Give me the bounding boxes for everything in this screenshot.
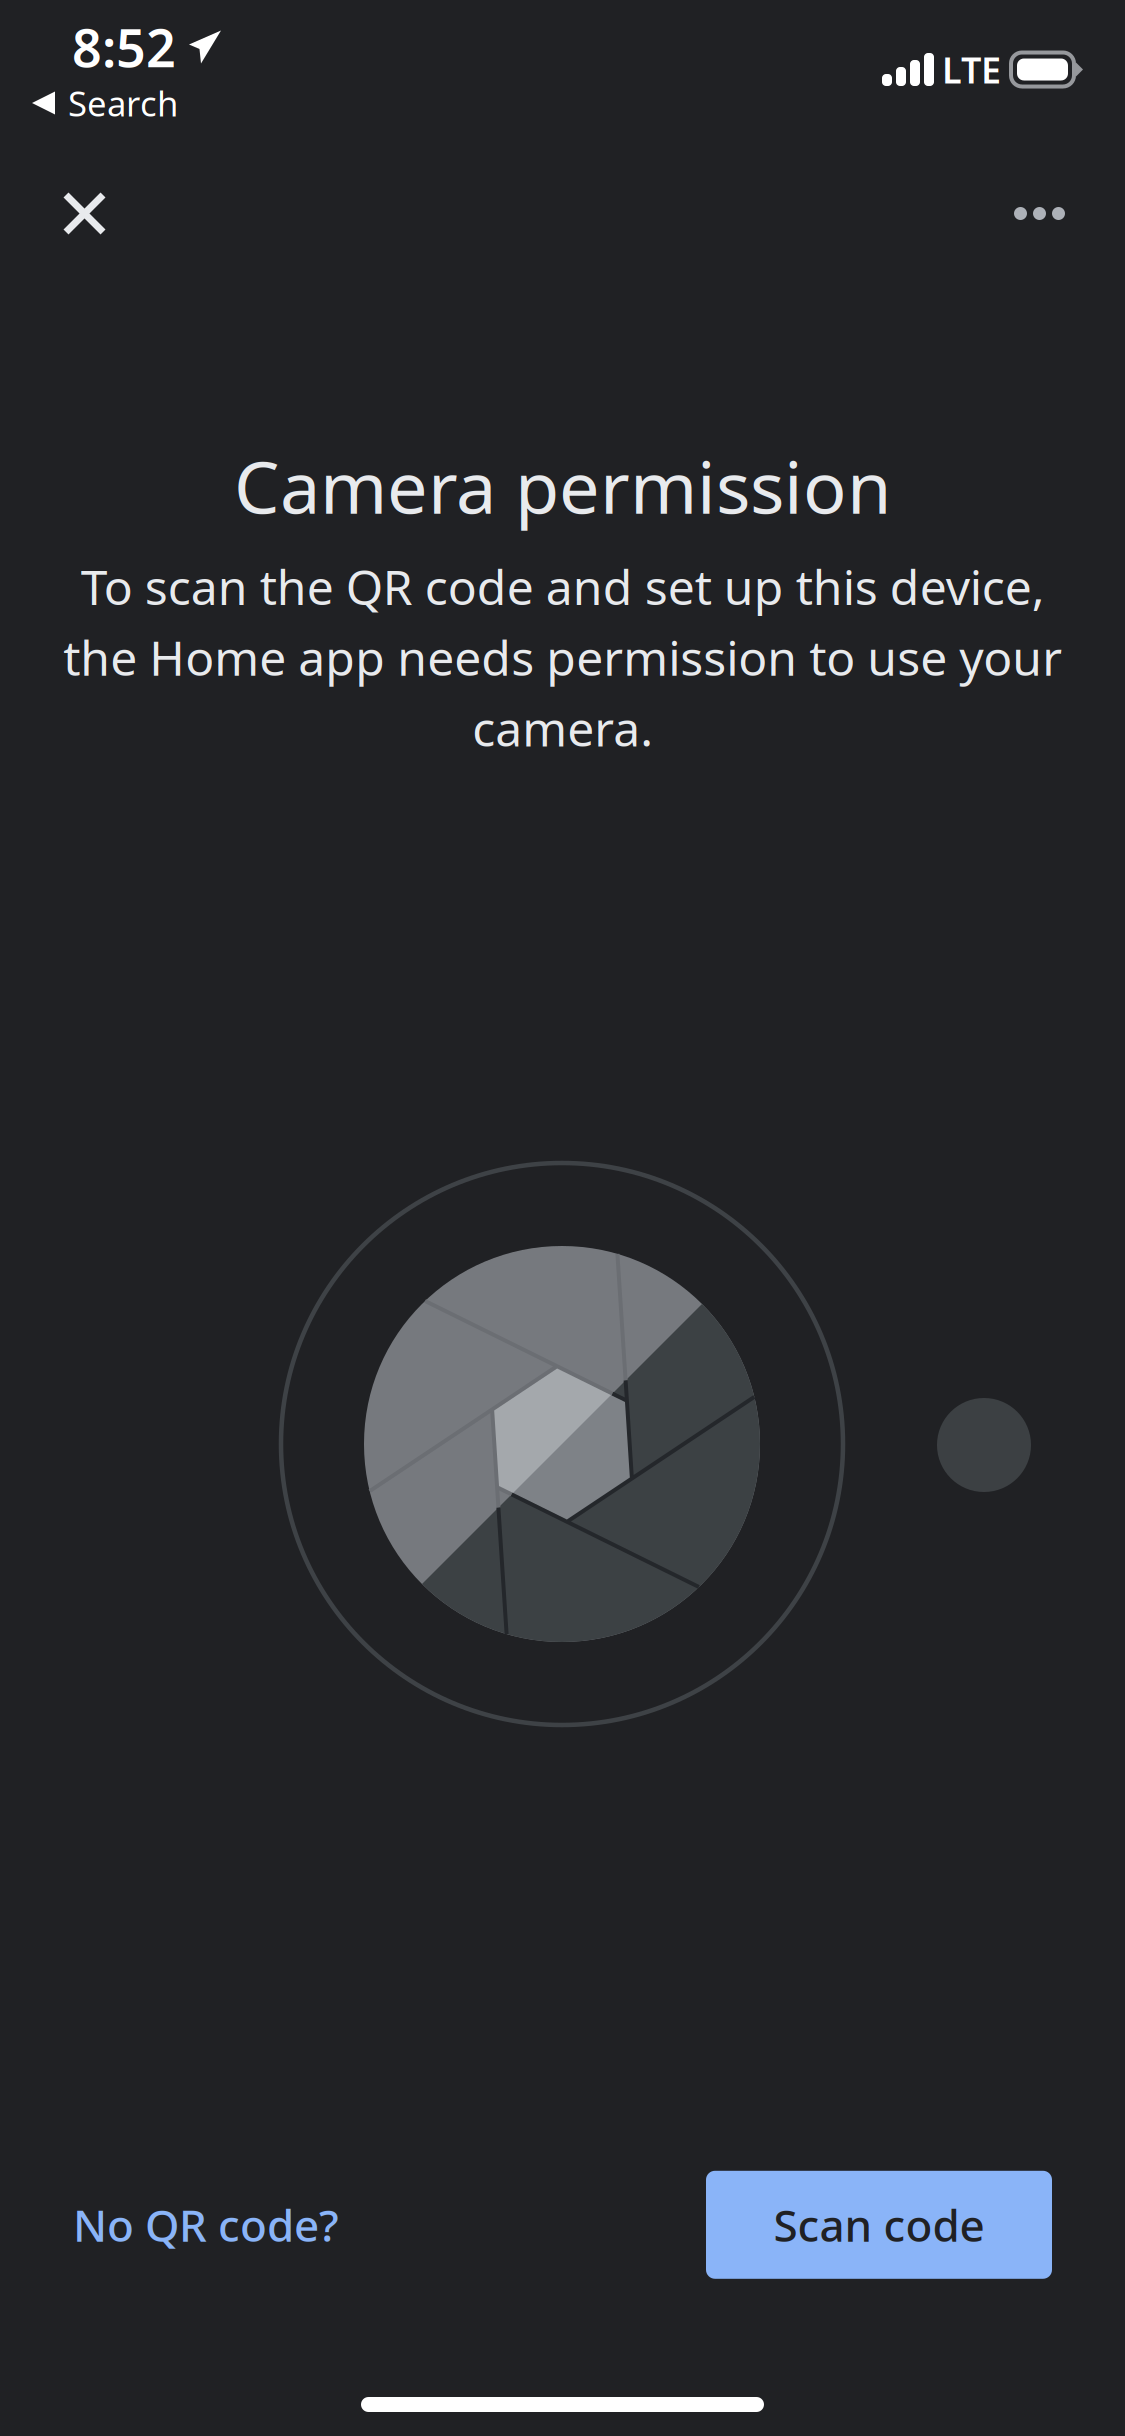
- staticText: To scan the QR code and set up this devi…: [63, 555, 1062, 760]
- staticText: No QR code?: [73, 2196, 339, 2254]
- staticText: LTE: [942, 46, 1001, 93]
- button[interactable]: No QR code?: [63, 2162, 349, 2288]
- staticText: Camera permission: [234, 438, 891, 534]
- staticText: Search: [68, 80, 178, 126]
- staticText: Scan code: [773, 2196, 984, 2254]
- button[interactable]: Search: [0, 83, 1125, 123]
- staticText: 8:52: [72, 12, 176, 82]
- button[interactable]: More options: [992, 170, 1087, 257]
- button[interactable]: Close: [41, 170, 128, 257]
- button[interactable]: Scan code: [706, 2171, 1052, 2279]
